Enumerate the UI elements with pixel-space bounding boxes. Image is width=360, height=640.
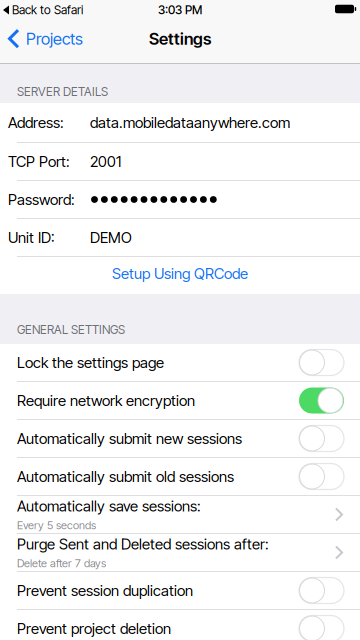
button[interactable]: Automatically submit old sessions (299, 463, 344, 489)
staticText: Delete after 7 days (17, 557, 106, 570)
staticText: Lock the settings page (17, 353, 164, 371)
button[interactable]: Prevent session duplication (299, 577, 344, 603)
button[interactable]: Require network encryption (299, 387, 344, 413)
button[interactable]: Purge Sent and Deleted sessions after: (0, 534, 360, 571)
staticText: Settings (149, 29, 211, 49)
staticText: Setup Using QRCode (112, 264, 248, 282)
staticText: Automatically submit new sessions (17, 429, 242, 447)
button[interactable]: Setup Using QRCode (0, 257, 360, 294)
staticText: SERVER DETAILS (17, 84, 108, 99)
button[interactable]: Back to Projects (0, 29, 83, 49)
staticText: Automatically save sessions: (17, 497, 201, 515)
button[interactable]: Prevent project deletion (299, 615, 344, 640)
button[interactable]: Automatically submit new sessions (299, 425, 344, 451)
staticText: Address: (8, 113, 64, 131)
staticText: 3:03 PM (158, 3, 202, 17)
staticText: GENERAL SETTINGS (17, 322, 125, 337)
staticText: Prevent project deletion (17, 619, 171, 637)
staticText: Password: (8, 190, 75, 208)
staticText: TCP Port: (8, 152, 70, 170)
button[interactable]: Automatically save sessions: (0, 496, 360, 533)
staticText: data.mobiledataanywhere.com (90, 113, 290, 131)
staticText: Require network encryption (17, 391, 195, 409)
button[interactable]: Lock the settings page (299, 349, 344, 375)
staticText: 2001 (90, 152, 121, 170)
staticText: Automatically submit old sessions (17, 467, 234, 485)
staticText: Projects (26, 29, 83, 49)
staticText: Unit ID: (8, 228, 55, 246)
button[interactable]: Back to Safari (0, 3, 83, 17)
staticText: DEMO (90, 228, 132, 246)
staticText: Every 5 seconds (17, 519, 96, 532)
staticText: Back to Safari (12, 3, 83, 17)
staticText: Prevent session duplication (17, 581, 193, 599)
staticText: Purge Sent and Deleted sessions after: (17, 535, 269, 553)
